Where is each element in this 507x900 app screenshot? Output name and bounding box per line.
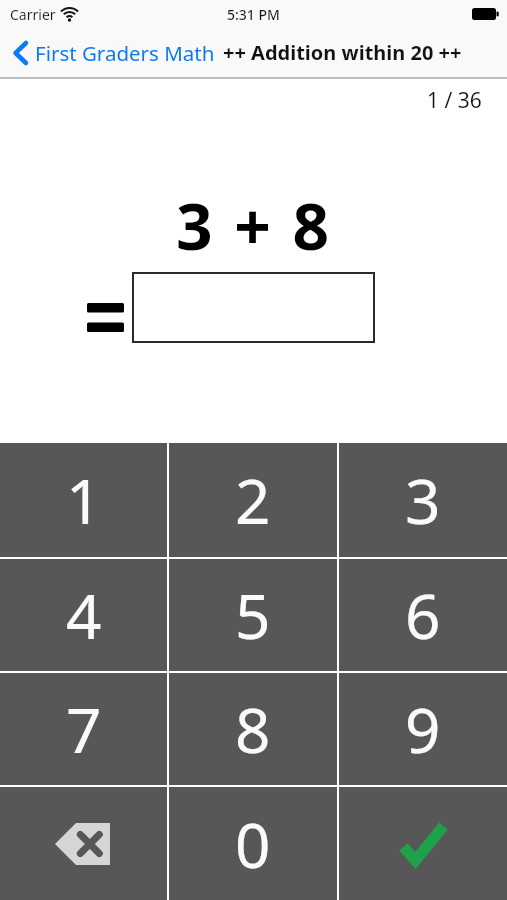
staticText: 5:31 PM bbox=[227, 5, 280, 24]
staticText: 5 bbox=[235, 573, 271, 657]
button[interactable]: 4 bbox=[0, 559, 167, 671]
staticText: 8 bbox=[235, 687, 271, 771]
staticText: First Graders Math bbox=[35, 39, 215, 67]
staticText: 3 bbox=[405, 458, 441, 542]
button[interactable] bbox=[0, 787, 167, 900]
button[interactable]: 7 bbox=[0, 673, 167, 785]
staticText: 6 bbox=[405, 573, 441, 657]
staticText: 1 bbox=[66, 458, 102, 542]
staticText: 4 bbox=[66, 573, 102, 657]
button[interactable]: 6 bbox=[339, 559, 507, 671]
staticText: ++ Addition within 20 ++ bbox=[223, 39, 462, 66]
staticText: 7 bbox=[66, 687, 102, 771]
button[interactable]: 8 bbox=[169, 673, 337, 785]
staticText: 2 bbox=[235, 458, 271, 542]
button[interactable]: First Graders Math bbox=[13, 28, 507, 77]
staticText: 0 bbox=[235, 802, 271, 886]
button[interactable] bbox=[132, 272, 375, 343]
staticText: 3 + 8 bbox=[176, 182, 332, 269]
button[interactable] bbox=[339, 787, 507, 900]
button[interactable]: 2 bbox=[169, 443, 337, 557]
button[interactable]: 1 bbox=[0, 443, 167, 557]
button[interactable]: 9 bbox=[339, 673, 507, 785]
staticText: 1 / 36 bbox=[427, 86, 482, 115]
staticText: 9 bbox=[405, 687, 441, 771]
staticText: Carrier bbox=[10, 5, 56, 24]
button[interactable]: 0 bbox=[169, 787, 337, 900]
button[interactable]: 5 bbox=[169, 559, 337, 671]
button[interactable]: 3 bbox=[339, 443, 507, 557]
